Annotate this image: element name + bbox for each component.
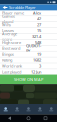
staticText: Average score [2, 31, 17, 42]
staticText: Rating [2, 57, 12, 63]
staticText: Scrabble Player [9, 5, 36, 10]
button[interactable]: Recent apps [41, 115, 50, 122]
button[interactable]: Tab 3 [23, 104, 34, 114]
staticText: 1682 [33, 57, 41, 63]
staticText: 27 [37, 22, 41, 27]
button[interactable]: Tab 2 [11, 104, 23, 114]
staticText: SHOW ON MAP [14, 77, 43, 82]
staticText: Wins [2, 22, 11, 27]
staticText: 3 [39, 63, 41, 69]
staticText: Last played [2, 69, 21, 74]
staticText: Alex [33, 10, 41, 15]
staticText: Bingos [2, 51, 14, 57]
staticText: 321.4 [32, 34, 41, 39]
staticText: World rank [2, 63, 22, 69]
staticText: 12 Jun [31, 69, 41, 74]
staticText: 15 [37, 28, 41, 33]
button[interactable]: SHOW ON MAP [0, 75, 57, 84]
staticText: Best word [2, 46, 20, 51]
button[interactable]: Back [1, 4, 9, 11]
staticText: 19 [37, 51, 41, 57]
staticText: QUIXOTRY [26, 43, 41, 53]
button[interactable]: Tab 5 [46, 104, 57, 114]
button[interactable]: Back [7, 115, 16, 122]
staticText: Losses [2, 28, 14, 33]
button[interactable]: Tab 1 [0, 104, 11, 114]
staticText: High score [2, 40, 21, 45]
staticText: 42 [37, 16, 41, 21]
staticText: 548 [35, 40, 41, 45]
staticText: Games played [2, 13, 15, 24]
button[interactable]: Tab 4 [34, 104, 46, 114]
button[interactable]: Home [24, 115, 33, 122]
staticText: Player name [2, 10, 24, 15]
